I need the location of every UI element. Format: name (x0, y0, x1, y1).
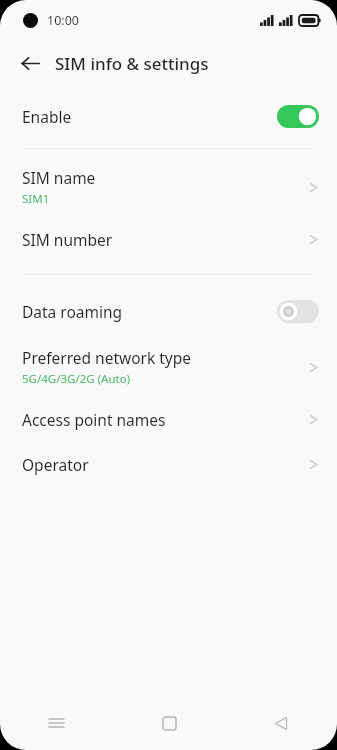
staticText: Preferred network type (22, 347, 192, 368)
staticText: SIM1 (22, 191, 50, 207)
staticText: 10:00 (47, 12, 79, 29)
staticText: SIM info & settings (55, 52, 209, 75)
staticText: Access point names (22, 409, 166, 430)
button[interactable]: Enable (0, 96, 337, 136)
staticText: SIM number (22, 229, 113, 250)
button[interactable]: Back (225, 696, 337, 750)
staticText: Enable (22, 106, 72, 127)
button[interactable]: On (277, 105, 319, 128)
staticText: Data roaming (22, 301, 123, 322)
button[interactable]: Operator (0, 452, 337, 477)
button[interactable]: SIM name (0, 165, 337, 209)
button[interactable]: Recent apps (0, 696, 113, 750)
staticText: SIM name (22, 167, 96, 188)
staticText: 5G/4G/3G/2G (Auto) (22, 371, 131, 387)
staticText: Operator (22, 454, 89, 475)
button[interactable]: Off (277, 300, 319, 323)
button[interactable]: Back (12, 45, 48, 81)
button[interactable]: Access point names (0, 407, 337, 432)
button[interactable]: SIM number (0, 227, 337, 252)
button[interactable]: Home (113, 696, 225, 750)
button[interactable]: Preferred network type (0, 345, 337, 389)
button[interactable]: Data roaming (0, 291, 337, 331)
